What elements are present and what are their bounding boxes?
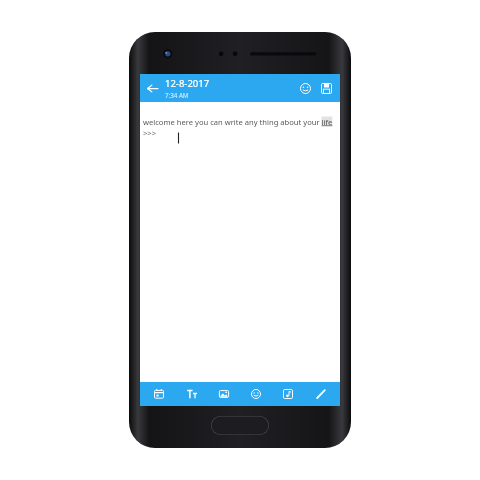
staticText: welcome here you can write any thing abo… bbox=[143, 117, 338, 138]
button[interactable]: Draw bbox=[308, 382, 334, 406]
staticText: 12-8-2017 bbox=[165, 77, 210, 90]
button[interactable]: Mood bbox=[294, 77, 316, 99]
staticText: 7:34 AM bbox=[165, 91, 189, 99]
button[interactable]: Insert emoji bbox=[243, 382, 269, 406]
button[interactable]: welcome here you can write any thing abo… bbox=[143, 117, 338, 382]
button[interactable]: Back bbox=[142, 78, 162, 98]
button[interactable]: Home bbox=[211, 416, 269, 435]
button[interactable]: Calendar bbox=[146, 382, 172, 406]
button[interactable]: Insert audio bbox=[275, 382, 301, 406]
button[interactable]: Text format bbox=[179, 382, 205, 406]
button[interactable]: Insert image bbox=[211, 382, 237, 406]
button[interactable]: Save bbox=[316, 77, 336, 99]
